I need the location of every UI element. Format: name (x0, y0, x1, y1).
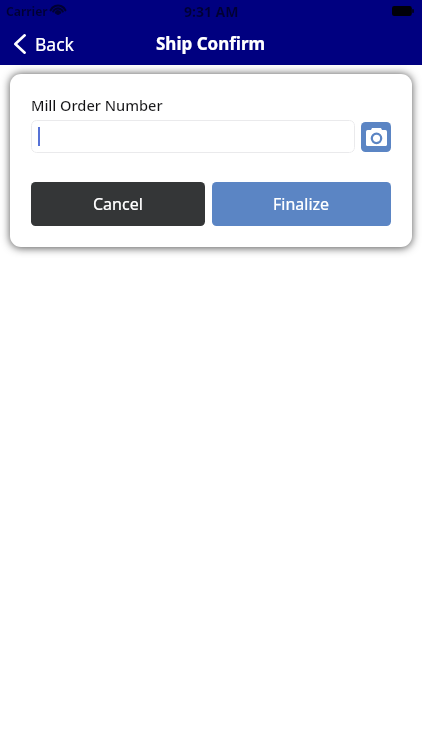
staticText: Back (35, 32, 74, 56)
button[interactable]: Cancel (31, 182, 205, 226)
button[interactable]: Scan barcode with camera (361, 122, 391, 152)
staticText: 9:31 AM (184, 2, 239, 21)
button[interactable]: Back (0, 27, 86, 61)
button[interactable]: Finalize (212, 182, 391, 226)
staticText: Mill Order Number (31, 95, 163, 115)
staticText: Carrier (6, 3, 48, 19)
staticText: Ship Confirm (156, 32, 266, 55)
staticText: Finalize (273, 193, 330, 215)
button[interactable] (31, 120, 355, 153)
staticText: Cancel (93, 193, 143, 215)
